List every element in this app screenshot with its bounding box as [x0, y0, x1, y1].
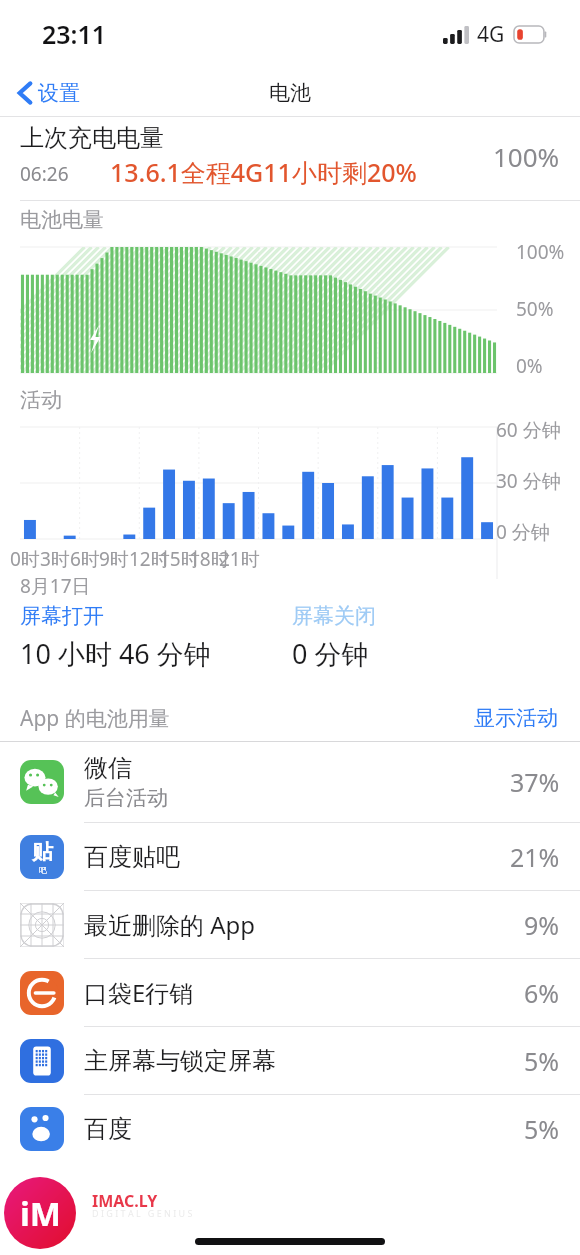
staticText: 18时	[189, 546, 230, 572]
button[interactable]: 设置	[14, 76, 84, 110]
staticText: 23:11	[42, 17, 107, 51]
staticText: 屏幕关闭	[292, 603, 376, 629]
button[interactable]: 最近删除的 App	[0, 891, 580, 958]
staticText: 屏幕打开	[20, 603, 104, 629]
staticText: 口袋E行销	[84, 976, 194, 1009]
staticText: 活动	[20, 387, 62, 413]
button[interactable]: 主屏幕与锁定屏幕	[0, 1027, 580, 1094]
staticText: 吧	[39, 865, 47, 875]
button[interactable]: 口袋E行销	[0, 959, 580, 1026]
staticText: 5%	[524, 1112, 560, 1146]
staticText: 电池电量	[20, 207, 104, 233]
staticText: 9%	[524, 908, 560, 942]
staticText: 6时	[70, 546, 100, 572]
staticText: 后台活动	[84, 785, 168, 811]
staticText: 3时	[40, 546, 70, 572]
staticText: 100%	[516, 239, 574, 265]
staticText: 50%	[516, 296, 574, 322]
staticText: 4G	[477, 20, 505, 49]
staticText: 10 小时 46 分钟	[20, 635, 211, 672]
staticText: App 的电池用量	[20, 704, 170, 733]
staticText: 设置	[38, 80, 80, 106]
staticText: 60 分钟	[496, 417, 576, 443]
staticText: iM	[20, 1191, 61, 1236]
staticText: 0 分钟	[292, 635, 369, 672]
staticText: 上次充电电量	[20, 123, 164, 153]
button[interactable]: 显示活动	[472, 703, 560, 733]
staticText: 37%	[510, 765, 560, 799]
staticText: 电池	[269, 80, 311, 106]
staticText: 5%	[524, 1044, 560, 1078]
staticText: 微信	[84, 753, 132, 783]
button[interactable]: 微信	[0, 742, 580, 822]
staticText: 21%	[510, 840, 560, 874]
button[interactable]: 贴	[0, 823, 580, 890]
staticText: 0时	[10, 546, 40, 572]
staticText: 主屏幕与锁定屏幕	[84, 1046, 276, 1076]
staticText: 0%	[516, 353, 574, 379]
staticText: 最近删除的 App	[84, 908, 256, 941]
button[interactable]: 百度	[0, 1095, 580, 1162]
staticText: D I G I T A L G E N I U S	[92, 1207, 193, 1219]
staticText: 100%	[493, 139, 560, 174]
staticText: IMAC.LY	[92, 1190, 158, 1212]
staticText: 12时	[129, 546, 170, 572]
staticText: 6%	[524, 976, 560, 1010]
staticText: 06:26	[20, 161, 69, 187]
staticText: 30 分钟	[496, 468, 576, 494]
staticText: 百度	[84, 1114, 132, 1144]
staticText: 贴	[32, 839, 53, 865]
staticText: 8月17日	[20, 573, 91, 595]
staticText: 9时	[99, 546, 129, 572]
staticText: 0 分钟	[496, 519, 576, 545]
staticText: 13.6.1全程4G11小时剩20%	[110, 155, 417, 189]
staticText: 15时	[159, 546, 200, 572]
staticText: 21时	[219, 546, 260, 572]
staticText: 百度贴吧	[84, 842, 180, 872]
